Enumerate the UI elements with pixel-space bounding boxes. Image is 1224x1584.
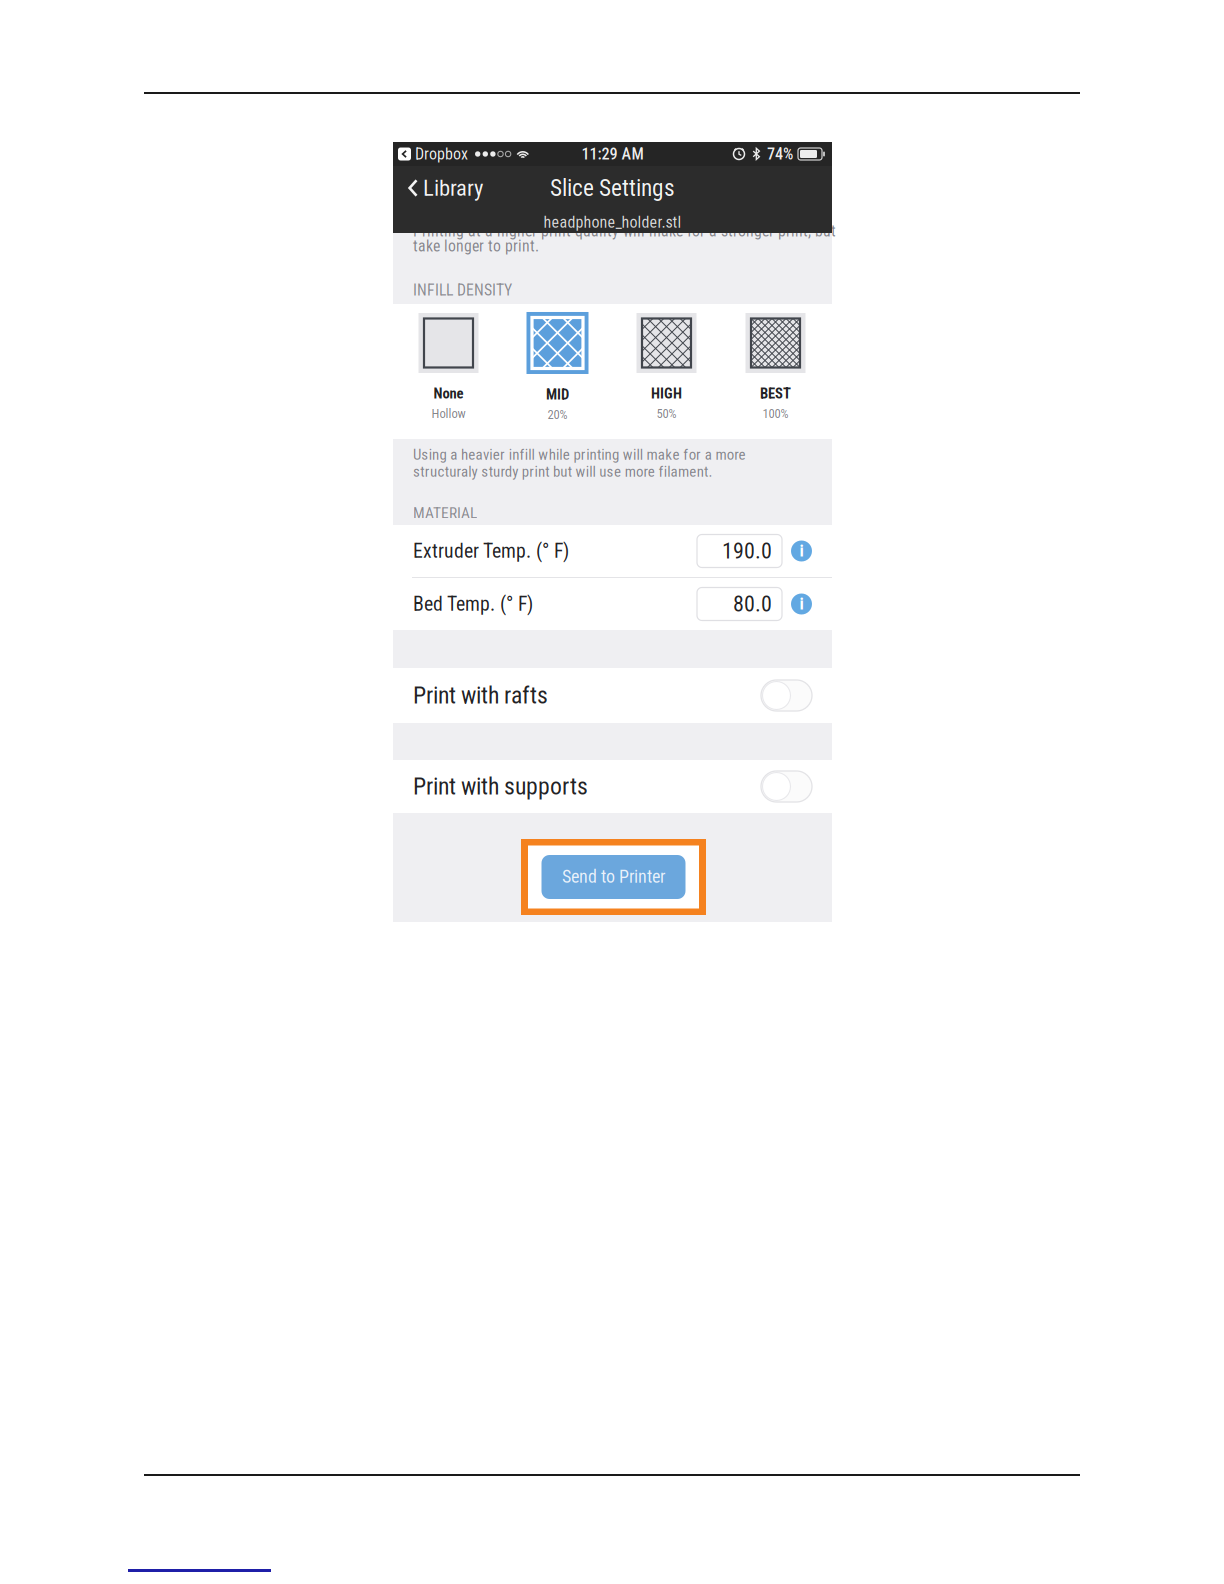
staticText: Slice Settings	[550, 174, 675, 202]
staticText: None	[433, 385, 463, 402]
staticText: 50%	[656, 406, 676, 421]
staticText: HIGH	[651, 385, 682, 402]
staticText: i	[799, 593, 803, 614]
staticText: take longer to print.	[413, 237, 539, 255]
staticText: structuraly sturdy print but will use mo…	[413, 463, 712, 480]
staticText: Printing at a higher print quality will …	[413, 222, 836, 240]
staticText: Print with rafts	[413, 682, 548, 709]
staticText: 20%	[547, 407, 567, 422]
button[interactable]: Back to Dropbox	[398, 147, 411, 160]
button[interactable]: Send to Printer	[541, 855, 685, 899]
staticText: MATERIAL	[413, 504, 477, 522]
staticText: headphone_holder.stl	[543, 213, 681, 232]
staticText: BEST	[760, 385, 791, 402]
staticText: Library	[423, 175, 483, 201]
staticText: 100%	[762, 406, 788, 421]
staticText: Extruder Temp. (° F)	[413, 539, 569, 562]
staticText: INFILL DENSITY	[413, 281, 512, 299]
button[interactable]: HIGH	[612, 311, 721, 423]
staticText: Print with supports	[413, 773, 588, 800]
staticText: Send to Printer	[562, 866, 665, 887]
button[interactable]: None	[394, 311, 503, 423]
staticText: i	[799, 540, 803, 561]
staticText: Dropbox	[415, 145, 468, 163]
button[interactable]: Print with rafts	[393, 668, 832, 723]
staticText: Hollow	[431, 406, 465, 421]
staticText: 80.0	[733, 591, 772, 617]
staticText: MID	[546, 386, 569, 403]
button[interactable]: More info	[791, 540, 812, 561]
staticText: Bed Temp. (° F)	[413, 592, 533, 615]
staticText: 74%	[767, 144, 793, 164]
staticText: 190.0	[722, 538, 772, 564]
button[interactable]: Print with supports	[393, 760, 832, 813]
button[interactable]: Library	[393, 171, 497, 205]
button[interactable]: More info	[791, 593, 812, 614]
staticText: Using a heavier infill while printing wi…	[413, 446, 745, 463]
button[interactable]: BEST	[721, 311, 830, 423]
staticText: 11:29 AM	[581, 144, 643, 164]
button[interactable]: MID	[503, 311, 612, 423]
